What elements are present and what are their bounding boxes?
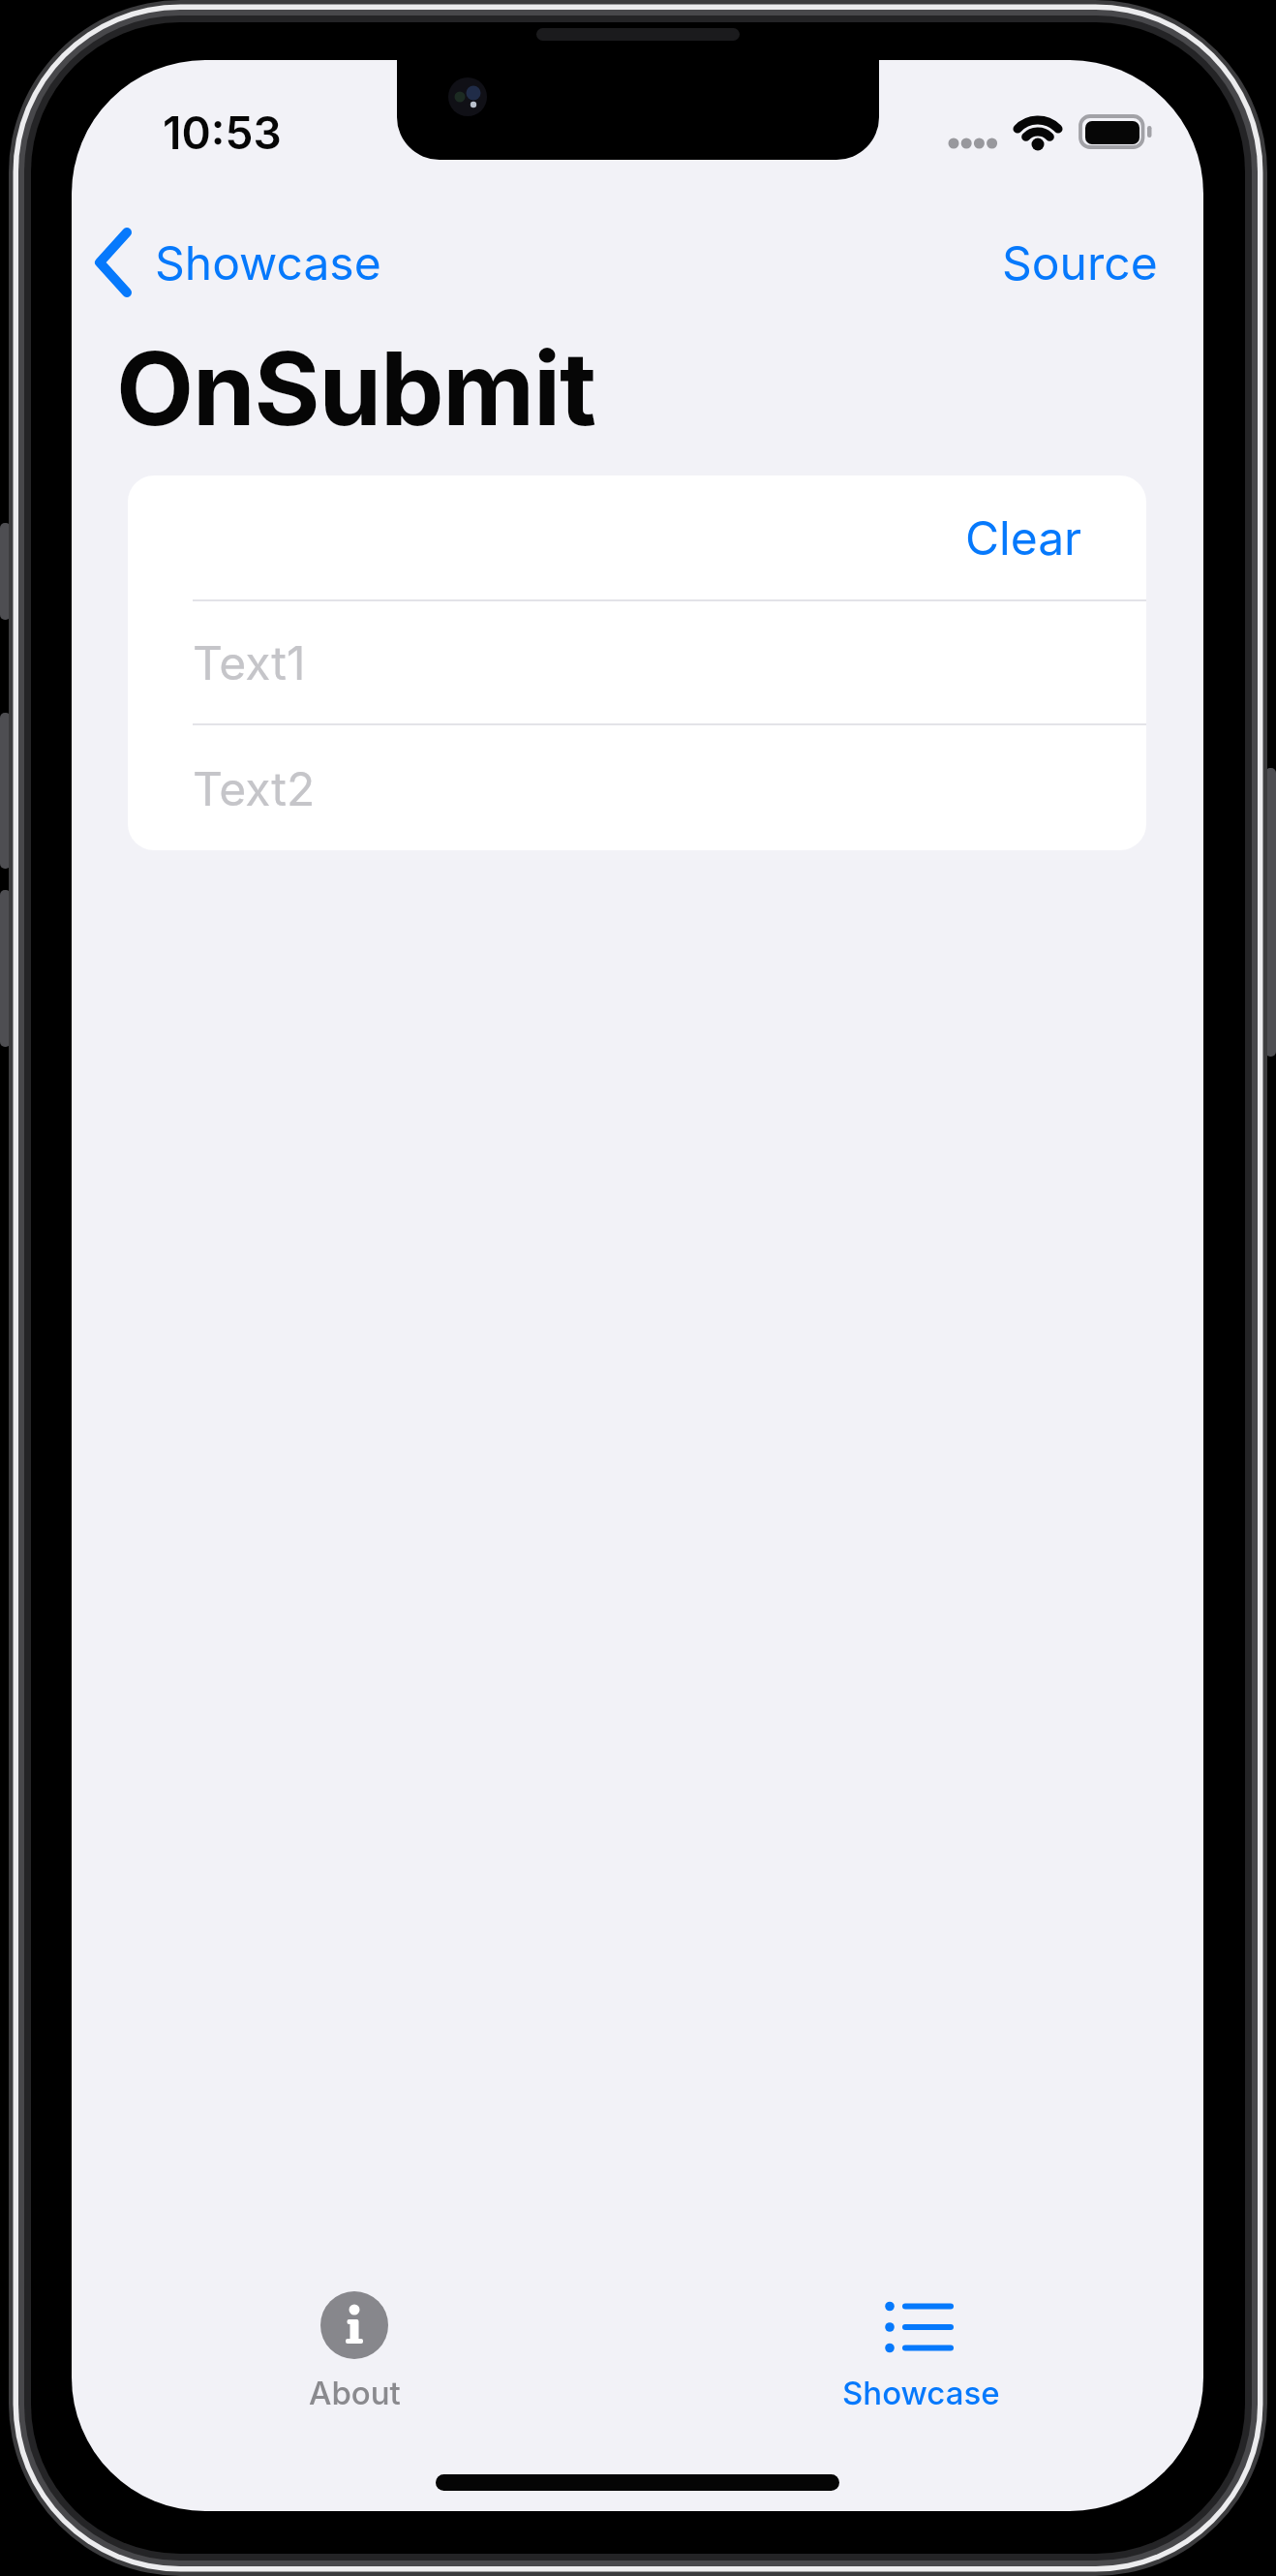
button[interactable]: Clear: [128, 475, 1146, 599]
button[interactable]: Source: [945, 227, 1158, 298]
staticText: Showcase: [842, 2374, 1000, 2412]
button[interactable]: Showcase: [824, 2283, 1018, 2428]
staticText: About: [309, 2374, 401, 2412]
staticText: Source: [1002, 234, 1158, 291]
staticText: Text1: [193, 634, 306, 690]
staticText: Clear: [965, 509, 1082, 566]
button[interactable]: Text2: [128, 725, 1146, 850]
button[interactable]: About: [258, 2283, 451, 2428]
staticText: Text2: [193, 760, 316, 816]
button[interactable]: Text1: [128, 601, 1146, 723]
staticText: Showcase: [155, 234, 381, 291]
staticText: 10:53: [163, 106, 282, 160]
button[interactable]: Showcase: [91, 224, 381, 301]
staticText: OnSubmit: [116, 327, 595, 449]
